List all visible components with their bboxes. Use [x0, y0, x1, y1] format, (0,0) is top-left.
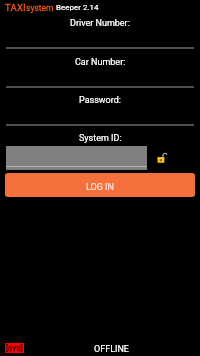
staticText: Driver Number:	[70, 18, 130, 29]
staticText: TAXI	[5, 2, 26, 13]
staticText: [SYS]	[6, 344, 23, 352]
button[interactable]	[6, 146, 147, 170]
button[interactable]: [SYS]	[5, 343, 24, 353]
staticText: OFFLINE	[94, 344, 129, 355]
staticText: Beeper 2.14	[56, 3, 99, 12]
staticText: Password:	[79, 95, 121, 106]
staticText: system	[26, 3, 54, 13]
staticText: System ID:	[79, 133, 122, 144]
button[interactable]: Unlock	[152, 148, 172, 168]
staticText: LOG IN	[86, 182, 114, 193]
staticText: Car Number:	[75, 57, 126, 68]
button[interactable]: LOG IN	[5, 173, 195, 197]
